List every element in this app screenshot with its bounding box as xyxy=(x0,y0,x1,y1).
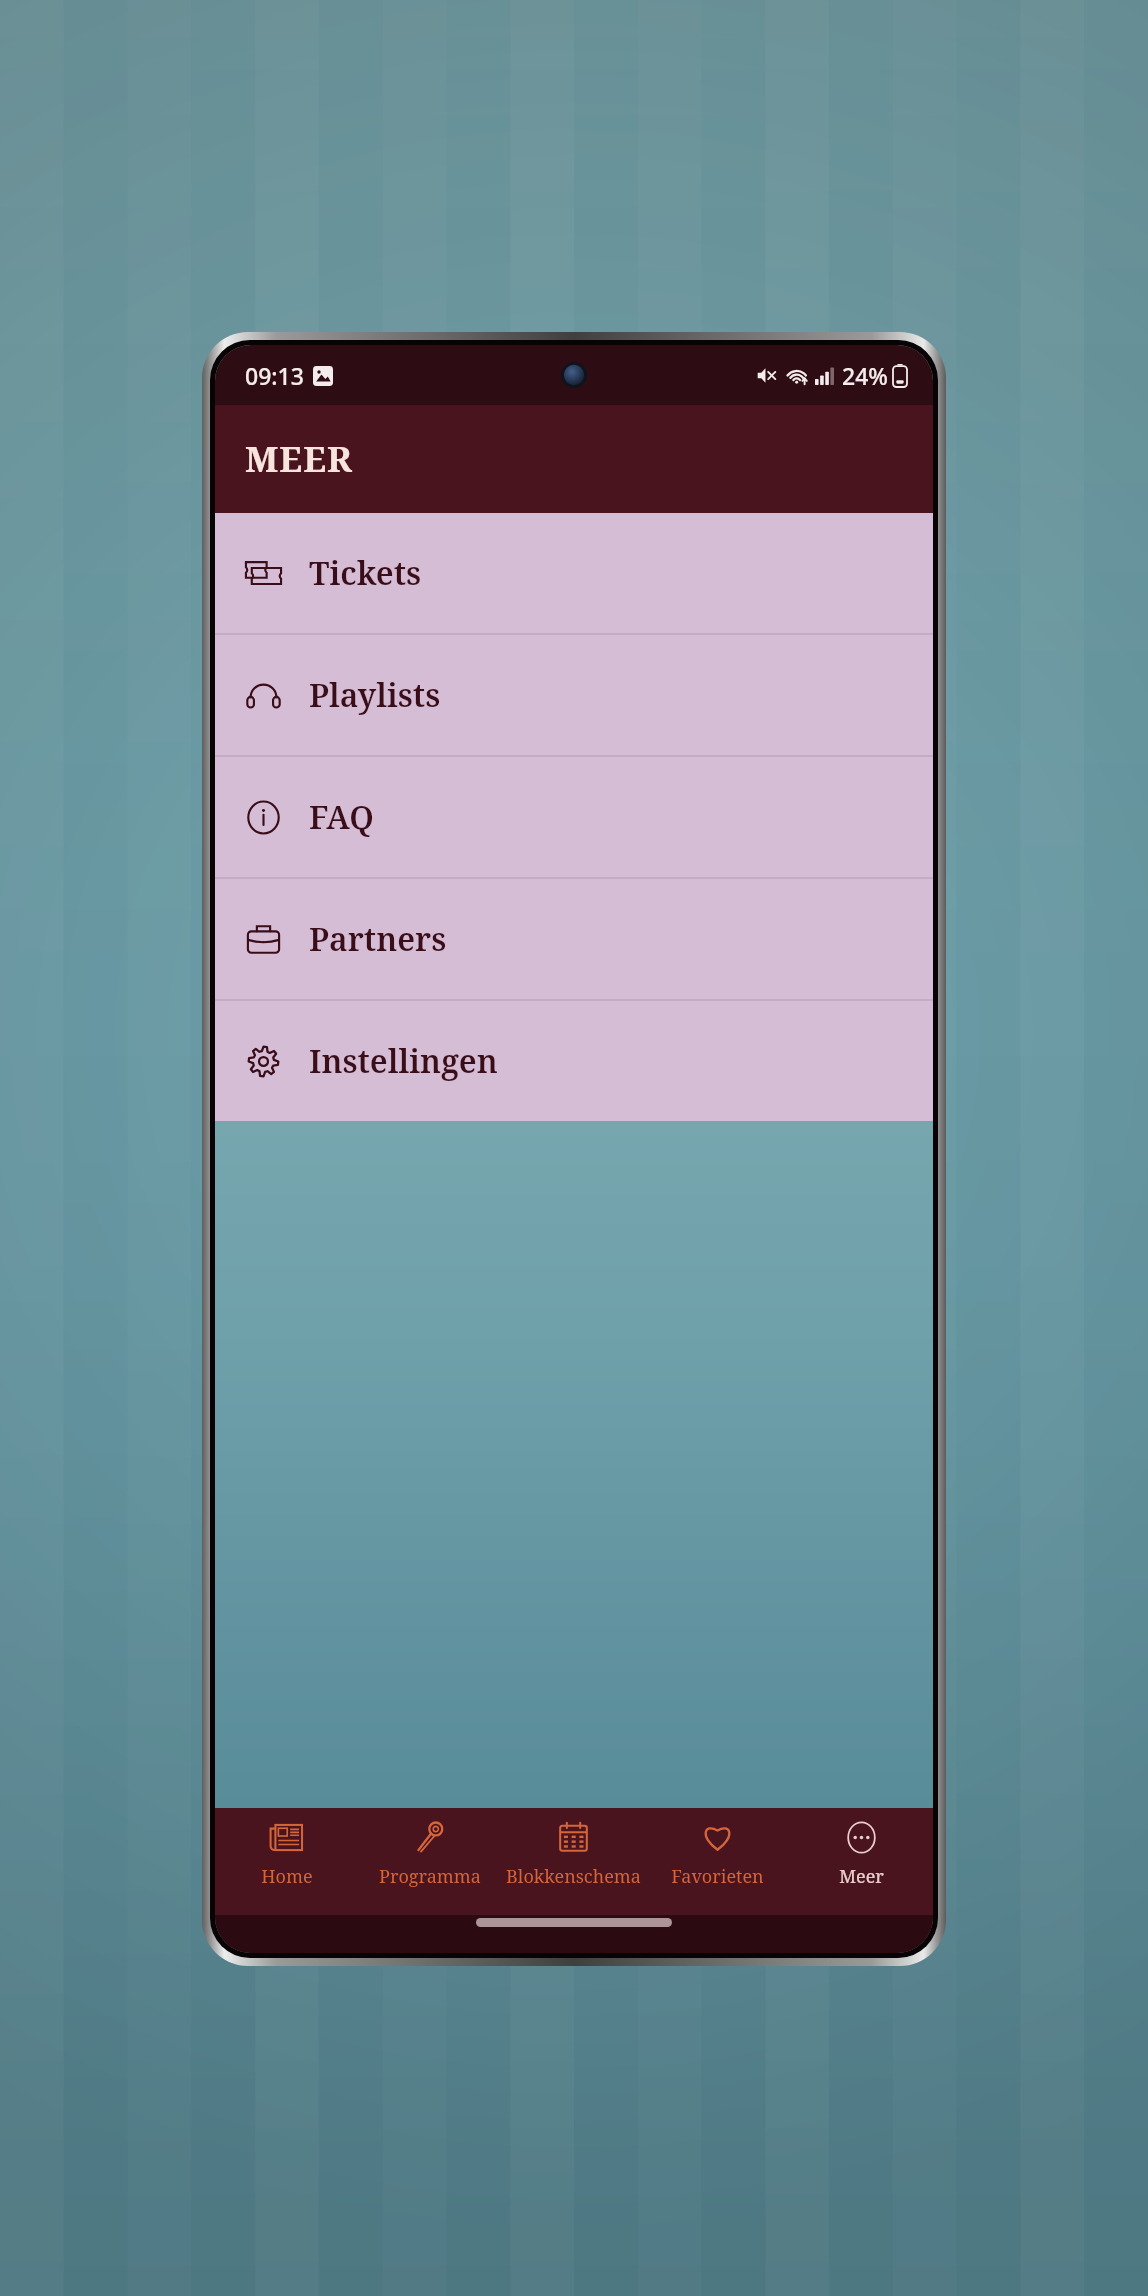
staticText: Programma xyxy=(379,1864,481,1889)
staticText: Blokkenschema xyxy=(506,1864,641,1889)
staticText: Tickets xyxy=(309,551,422,595)
staticText: Home xyxy=(261,1864,313,1889)
staticText: Playlists xyxy=(309,673,441,717)
staticText: 24% xyxy=(842,360,888,391)
button[interactable]: Meer xyxy=(789,1808,933,1915)
staticText: Instellingen xyxy=(309,1039,498,1083)
button[interactable]: Home xyxy=(215,1808,358,1915)
button[interactable]: Tickets xyxy=(215,513,933,633)
staticText: Meer xyxy=(839,1864,884,1889)
staticText: 09:13 xyxy=(245,360,304,391)
button[interactable]: Instellingen xyxy=(215,1001,933,1121)
button[interactable]: Partners xyxy=(215,879,933,999)
staticText: FAQ xyxy=(309,795,374,839)
button[interactable]: Programma xyxy=(358,1808,501,1915)
staticText: Partners xyxy=(309,917,447,961)
staticText: Favorieten xyxy=(671,1864,764,1889)
staticText: MEER xyxy=(245,435,353,483)
button[interactable]: Favorieten xyxy=(645,1808,789,1915)
button[interactable]: Playlists xyxy=(215,635,933,755)
button[interactable]: FAQ xyxy=(215,757,933,877)
button[interactable]: Blokkenschema xyxy=(501,1808,645,1915)
